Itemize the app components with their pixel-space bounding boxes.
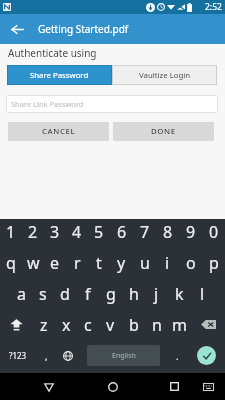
staticText: 4 <box>72 221 82 243</box>
button[interactable]: English <box>87 345 160 366</box>
button[interactable]: o <box>179 247 202 278</box>
staticText: n <box>152 314 162 336</box>
button[interactable]: Back <box>29 373 69 400</box>
staticText: 3 <box>50 221 60 243</box>
button[interactable]: v <box>99 309 122 340</box>
button[interactable]: s <box>32 278 54 309</box>
button[interactable]: 6 <box>110 217 133 247</box>
button[interactable]: l <box>191 278 214 309</box>
button[interactable]: q <box>0 247 22 278</box>
staticText: e <box>50 252 60 274</box>
button[interactable]: Done <box>187 340 225 371</box>
staticText: j <box>154 283 159 305</box>
button[interactable]: u <box>133 247 156 278</box>
staticText: Authenticate using <box>8 46 97 60</box>
button[interactable]: t <box>88 247 110 278</box>
button[interactable]: a <box>10 278 32 309</box>
staticText: t <box>96 252 102 274</box>
button[interactable]: n <box>145 309 168 340</box>
button[interactable]: d <box>54 278 76 309</box>
staticText: 8 <box>163 221 173 243</box>
button[interactable]: i <box>156 247 179 278</box>
staticText: 2:52 <box>205 1 222 13</box>
staticText: DONE <box>151 126 176 137</box>
button[interactable]: m <box>168 309 191 340</box>
staticText: ?123 <box>9 350 27 361</box>
button[interactable]: 7 <box>133 217 156 247</box>
staticText: 0 <box>209 221 219 243</box>
staticText: i <box>165 252 170 274</box>
button[interactable]: Back <box>6 18 28 40</box>
button[interactable]: Share Password <box>7 65 112 85</box>
button[interactable]: k <box>168 278 191 309</box>
staticText: y <box>117 252 126 274</box>
staticText: z <box>40 314 48 336</box>
button[interactable]: g <box>99 278 122 309</box>
button[interactable]: 8 <box>156 217 179 247</box>
staticText: c <box>84 314 92 336</box>
staticText: w <box>27 252 40 274</box>
staticText: q <box>6 252 16 274</box>
button[interactable]: 9 <box>179 217 202 247</box>
button[interactable]: 4 <box>66 217 88 247</box>
button[interactable]: Vaultize Login <box>112 65 217 85</box>
button[interactable]: Home <box>93 373 133 400</box>
staticText: b <box>129 314 139 336</box>
button[interactable]: z <box>33 309 55 340</box>
staticText: l <box>200 283 205 305</box>
staticText: k <box>175 283 184 305</box>
button[interactable]: Backspace <box>191 309 225 340</box>
button[interactable]: f <box>76 278 99 309</box>
staticText: v <box>106 314 115 336</box>
staticText: r <box>74 252 81 274</box>
button[interactable]: r <box>66 247 88 278</box>
staticText: f <box>85 283 91 305</box>
staticText: 2 <box>28 221 38 243</box>
button[interactable]: 1 <box>0 217 22 247</box>
button[interactable]: , <box>36 340 56 371</box>
staticText: o <box>186 252 196 274</box>
button[interactable]: Change language <box>56 340 80 371</box>
staticText: 1 <box>6 221 16 243</box>
button[interactable]: Share Link Password <box>6 95 218 113</box>
button[interactable]: CANCEL <box>8 122 109 141</box>
button[interactable]: x <box>55 309 77 340</box>
button[interactable]: b <box>122 309 145 340</box>
button[interactable]: . <box>167 340 187 371</box>
button[interactable]: e <box>44 247 66 278</box>
staticText: English <box>112 351 136 361</box>
staticText: , <box>45 350 48 362</box>
staticText: h <box>129 283 139 305</box>
button[interactable]: 5 <box>88 217 110 247</box>
staticText: Share Password <box>30 70 89 81</box>
button[interactable]: y <box>110 247 133 278</box>
button[interactable]: Recents <box>154 373 194 400</box>
staticText: s <box>39 283 47 305</box>
staticText: 6 <box>117 221 127 243</box>
button[interactable]: Shift <box>0 309 33 340</box>
staticText: Share Link Password <box>11 99 84 109</box>
button[interactable]: Switch keyboard <box>193 373 223 400</box>
button[interactable]: DONE <box>113 122 214 141</box>
staticText: g <box>106 283 116 305</box>
button[interactable]: ?123 <box>0 340 36 371</box>
button[interactable]: h <box>122 278 145 309</box>
staticText: u <box>140 252 150 274</box>
button[interactable]: c <box>77 309 99 340</box>
staticText: m <box>172 314 187 336</box>
button[interactable]: 0 <box>202 217 225 247</box>
button[interactable]: j <box>145 278 168 309</box>
staticText: Vaultize Login <box>139 70 191 81</box>
button[interactable]: 3 <box>44 217 66 247</box>
staticText: a <box>17 283 26 305</box>
staticText: Getting Started.pdf <box>38 22 129 36</box>
staticText: 5 <box>94 221 104 243</box>
staticText: d <box>60 283 70 305</box>
staticText: p <box>209 252 219 274</box>
staticText: . <box>176 350 179 362</box>
button[interactable]: 2 <box>22 217 44 247</box>
staticText: 9 <box>186 221 196 243</box>
staticText: CANCEL <box>42 126 76 137</box>
button[interactable]: p <box>202 247 225 278</box>
button[interactable]: w <box>22 247 44 278</box>
